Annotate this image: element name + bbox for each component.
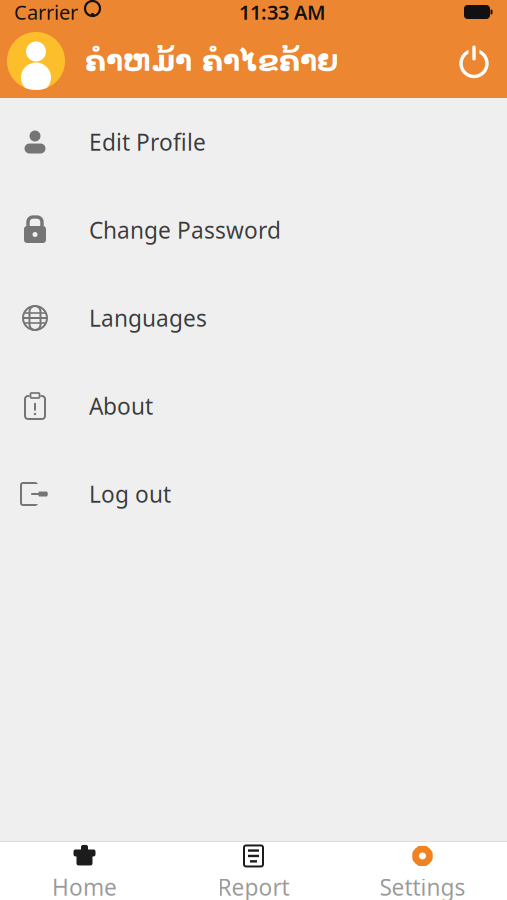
button[interactable]: Profile photo [0,32,65,90]
staticText: Edit Profile [89,127,206,157]
button[interactable]: Log out [457,43,507,79]
staticText: Settings [379,872,465,900]
button[interactable]: Languages [0,274,507,362]
button[interactable]: Log out [0,450,507,538]
staticText: 11:33 AM [239,0,326,25]
staticText: About [89,391,153,421]
button[interactable]: Change Password [0,186,507,274]
staticText: ຄໍາຫມ້າ ຄໍາໄຂຄ້າຍ [85,45,338,77]
button[interactable]: About [0,362,507,450]
button[interactable]: Settings [338,842,507,900]
staticText: Log out [89,479,171,509]
staticText: Languages [89,303,207,333]
staticText: Change Password [89,215,281,245]
staticText: Home [52,872,117,900]
button[interactable]: Home [0,842,169,900]
staticText: Carrier [14,0,78,25]
staticText: Report [217,872,289,900]
button[interactable]: Report [169,842,338,900]
button[interactable]: Edit Profile [0,98,507,186]
